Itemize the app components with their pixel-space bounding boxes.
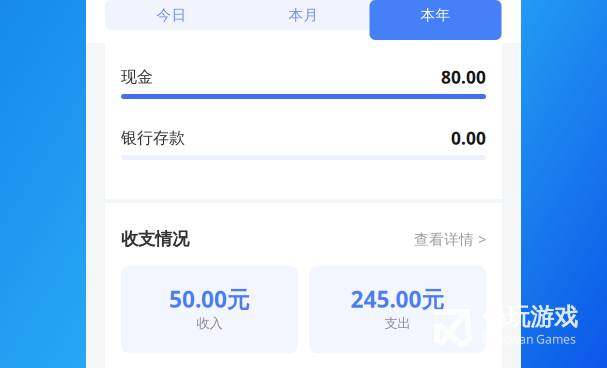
staticText: 50.00元: [169, 284, 250, 314]
button[interactable]: 本年: [369, 0, 501, 30]
button[interactable]: 本月: [237, 0, 369, 30]
staticText: 0.00: [451, 126, 486, 149]
button[interactable]: 245.00元: [309, 266, 486, 353]
staticText: 银行存款: [121, 128, 185, 148]
staticText: 仍玩游戏: [482, 302, 578, 332]
staticText: 本年: [420, 6, 450, 24]
staticText: 查看详情 >: [414, 229, 486, 249]
button[interactable]: 查看详情 >: [414, 229, 486, 249]
staticText: 支出: [384, 315, 410, 331]
staticText: Rengwan Games: [482, 331, 576, 347]
button[interactable]: 今日: [105, 0, 237, 30]
staticText: 今日: [156, 6, 186, 24]
staticText: 本月: [288, 6, 318, 24]
button[interactable]: 现金: [121, 69, 486, 99]
button[interactable]: 银行存款: [121, 130, 486, 160]
staticText: 80.00: [441, 65, 486, 88]
staticText: 收支情况: [121, 228, 189, 250]
staticText: 245.00元: [350, 284, 444, 314]
staticText: 现金: [121, 67, 153, 87]
button[interactable]: 50.00元: [121, 266, 298, 353]
staticText: 收入: [196, 315, 222, 331]
